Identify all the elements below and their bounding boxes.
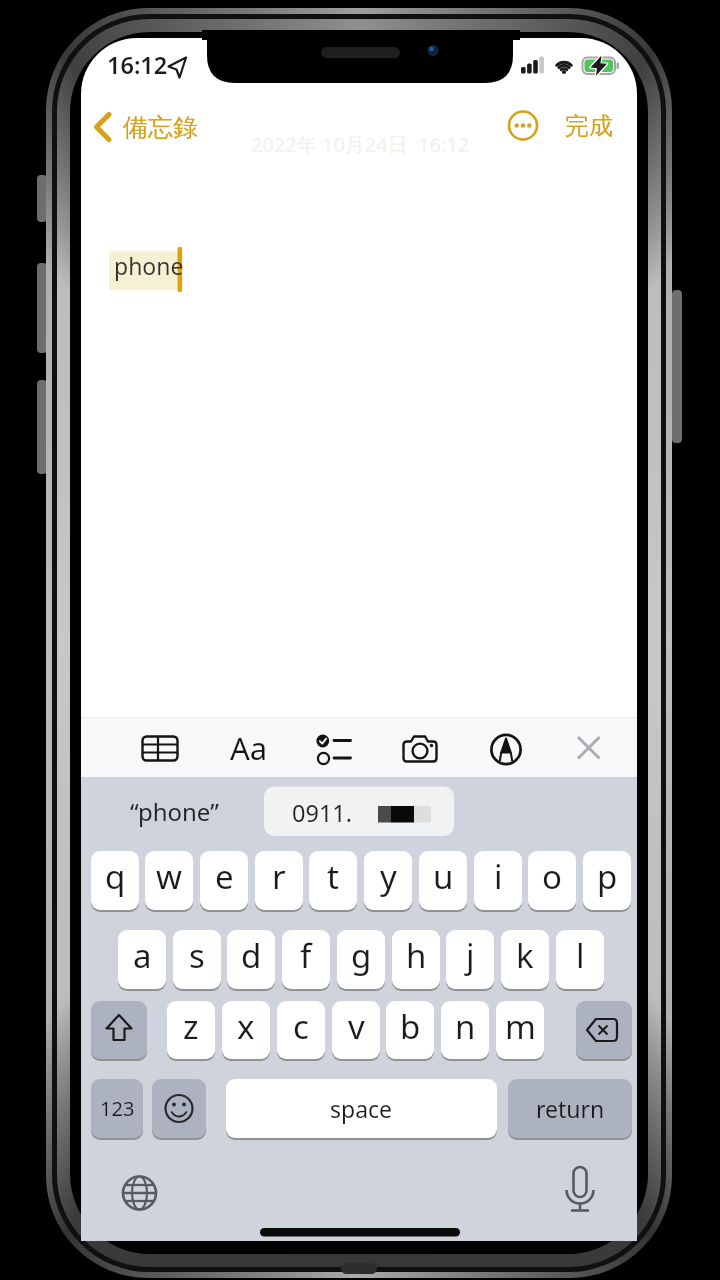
button[interactable] — [395, 723, 445, 773]
staticText: a — [133, 933, 152, 978]
staticText: c — [293, 1004, 309, 1049]
staticText: “phone” — [130, 795, 219, 828]
button[interactable]: e — [200, 851, 248, 910]
button[interactable]: o — [528, 851, 576, 910]
staticText: d — [241, 933, 262, 978]
staticText: h — [406, 933, 427, 978]
button[interactable]: r — [255, 851, 303, 910]
staticText: w — [156, 854, 182, 899]
button[interactable]: x — [222, 1001, 270, 1059]
staticText: n — [455, 1004, 476, 1049]
button[interactable]: b — [386, 1001, 434, 1059]
button[interactable] — [264, 786, 454, 836]
staticText: y — [380, 854, 397, 899]
button[interactable]: s — [173, 930, 221, 989]
staticText: l — [576, 933, 585, 978]
button[interactable]: u — [419, 851, 467, 910]
staticText: u — [433, 854, 454, 899]
button[interactable]: t — [309, 851, 357, 910]
button[interactable]: f — [282, 930, 330, 989]
button[interactable]: p — [583, 851, 631, 910]
button[interactable]: return — [508, 1079, 632, 1138]
button[interactable] — [553, 1160, 607, 1214]
staticText: m — [505, 1004, 536, 1049]
staticText: 完成 — [565, 111, 613, 141]
staticText: 123 — [100, 1095, 135, 1122]
staticText: 備忘錄 — [123, 112, 198, 143]
button[interactable]: m — [496, 1001, 544, 1059]
staticText: space — [330, 1093, 393, 1124]
staticText: i — [494, 854, 503, 899]
button[interactable]: g — [337, 930, 385, 989]
button[interactable] — [576, 1001, 632, 1059]
staticText: s — [189, 933, 205, 978]
staticText: x — [237, 1004, 255, 1049]
staticText: Aa — [230, 727, 268, 769]
button[interactable] — [308, 723, 358, 773]
staticText: f — [300, 933, 312, 978]
staticText: q — [105, 854, 126, 899]
button[interactable]: c — [277, 1001, 325, 1059]
button[interactable]: j — [446, 930, 494, 989]
staticText: o — [542, 854, 562, 899]
button[interactable]: d — [227, 930, 275, 989]
button[interactable]: 完成 — [563, 109, 615, 143]
staticText: z — [183, 1004, 199, 1049]
staticText: return — [536, 1093, 605, 1124]
button[interactable] — [564, 723, 614, 773]
staticText: e — [215, 854, 234, 899]
button[interactable]: 備忘錄 — [93, 108, 208, 146]
button[interactable] — [113, 1166, 167, 1220]
button[interactable] — [135, 723, 185, 773]
staticText: v — [348, 1004, 365, 1049]
button[interactable]: h — [392, 930, 440, 989]
staticText: b — [400, 1004, 421, 1049]
staticText: 16:12 — [107, 49, 168, 81]
staticText: g — [351, 933, 372, 978]
button[interactable]: q — [91, 851, 139, 910]
button[interactable]: space — [226, 1079, 497, 1138]
button[interactable]: z — [167, 1001, 215, 1059]
button[interactable] — [225, 723, 275, 773]
staticText: r — [272, 854, 286, 899]
button[interactable]: w — [145, 851, 193, 910]
button[interactable]: n — [441, 1001, 489, 1059]
button[interactable] — [152, 1079, 206, 1138]
staticText: 0911. — [292, 797, 353, 829]
button[interactable]: a — [118, 930, 166, 989]
button[interactable]: y — [364, 851, 412, 910]
button[interactable]: k — [501, 930, 549, 989]
button[interactable]: l — [556, 930, 604, 989]
button[interactable] — [91, 1001, 147, 1059]
button[interactable] — [481, 723, 531, 773]
staticText: k — [516, 933, 534, 978]
staticText: phone — [114, 250, 184, 281]
button[interactable]: 16:12 — [107, 49, 168, 81]
button[interactable]: 123 — [91, 1079, 143, 1138]
staticText: p — [597, 854, 618, 899]
button[interactable]: “phone” — [109, 786, 239, 836]
button[interactable]: v — [332, 1001, 380, 1059]
staticText: t — [327, 854, 339, 899]
button[interactable] — [505, 108, 541, 144]
staticText: j — [466, 933, 475, 978]
staticText: 2022年 10月24日 16:12 — [251, 131, 470, 158]
button[interactable]: i — [474, 851, 522, 910]
